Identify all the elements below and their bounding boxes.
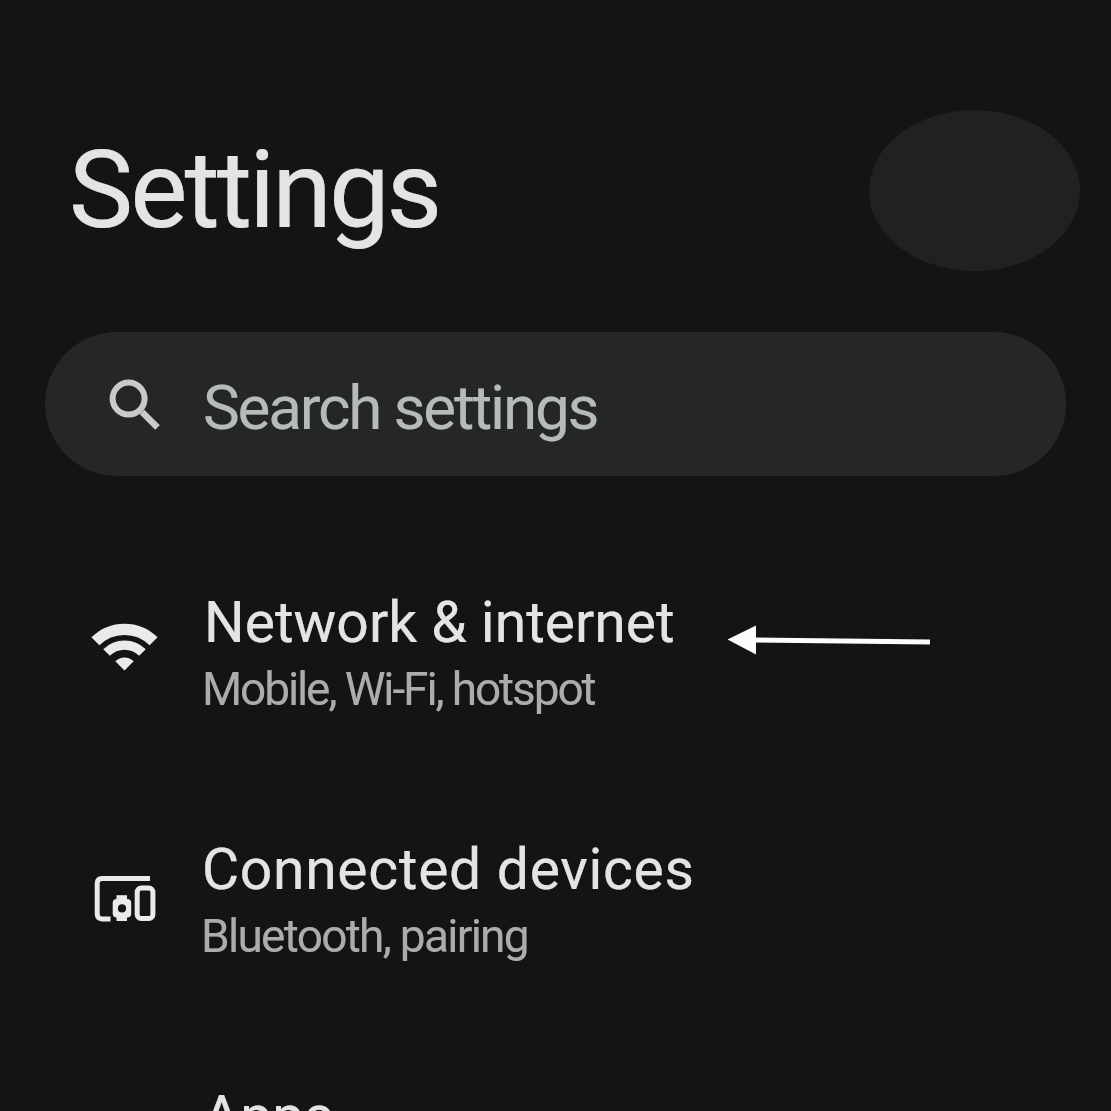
button[interactable] bbox=[869, 110, 1080, 271]
staticText: Settings bbox=[69, 127, 440, 254]
button[interactable]: Connected devices bbox=[0, 808, 1111, 1056]
staticText: Apps bbox=[203, 1083, 334, 1111]
button[interactable]: Network & internet bbox=[0, 560, 1111, 808]
button[interactable]: Apps bbox=[0, 1056, 1111, 1111]
staticText: Bluetooth, pairing bbox=[201, 909, 528, 963]
staticText: Network & internet bbox=[204, 589, 675, 656]
staticText: Mobile, Wi-Fi, hotspot bbox=[202, 662, 595, 716]
staticText: Search settings bbox=[203, 371, 598, 444]
staticText: Connected devices bbox=[202, 836, 695, 903]
button[interactable]: Search settings bbox=[45, 332, 1066, 476]
